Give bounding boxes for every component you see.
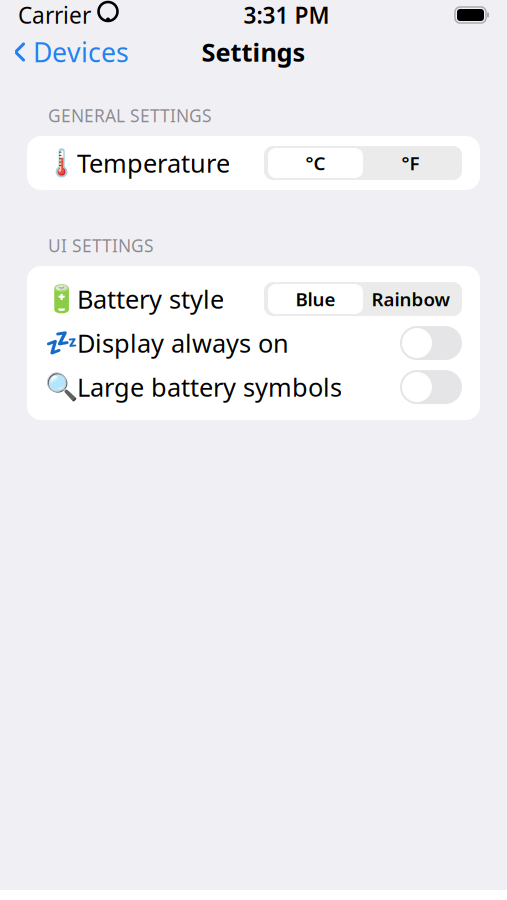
staticText: Devices bbox=[33, 34, 129, 70]
staticText: 🔍 bbox=[44, 372, 77, 402]
staticText: °C bbox=[305, 151, 325, 175]
button[interactable]: Blue bbox=[268, 284, 363, 314]
button[interactable]: 🌡️ bbox=[27, 146, 480, 180]
staticText: Settings bbox=[201, 35, 305, 69]
button[interactable]: 🔍 bbox=[27, 370, 480, 404]
staticText: GENERAL SETTINGS bbox=[48, 104, 212, 127]
staticText: 🔋 bbox=[44, 284, 77, 314]
staticText: 🌡️ bbox=[44, 148, 77, 178]
staticText: 💤 bbox=[44, 328, 77, 358]
staticText: Carrier bbox=[18, 0, 91, 30]
staticText: 3:31 PM bbox=[243, 0, 329, 30]
staticText: Rainbow bbox=[371, 287, 449, 311]
staticText: Blue bbox=[295, 287, 335, 311]
button[interactable]: 🔋 bbox=[27, 282, 480, 316]
button[interactable]: °C bbox=[268, 148, 363, 178]
button[interactable]: Rainbow bbox=[363, 284, 458, 314]
staticText: Display always on bbox=[77, 326, 289, 360]
staticText: Large battery symbols bbox=[77, 370, 342, 404]
button[interactable]: Display always on bbox=[400, 326, 462, 360]
button[interactable]: Devices bbox=[0, 26, 143, 78]
button[interactable]: Large battery symbols bbox=[400, 370, 462, 404]
button[interactable]: °F bbox=[363, 148, 458, 178]
staticText: UI SETTINGS bbox=[48, 234, 154, 257]
button[interactable]: 💤 bbox=[27, 326, 480, 360]
staticText: Temperature bbox=[77, 146, 230, 180]
staticText: Battery style bbox=[77, 282, 224, 316]
staticText: °F bbox=[401, 151, 419, 175]
